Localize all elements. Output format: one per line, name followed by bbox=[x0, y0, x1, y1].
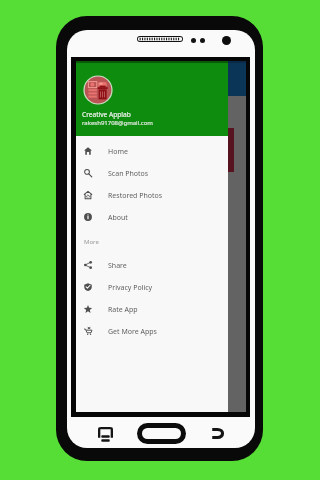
staticText: Rate App bbox=[108, 305, 138, 315]
button[interactable]: Share bbox=[76, 253, 228, 275]
button[interactable]: Get More Apps bbox=[76, 319, 228, 341]
button[interactable]: Back bbox=[207, 423, 228, 444]
staticText: About bbox=[108, 213, 128, 223]
staticText: Scan Photos bbox=[108, 169, 149, 179]
button[interactable]: Scan Photos bbox=[76, 161, 228, 183]
staticText: Get More Apps bbox=[108, 327, 157, 337]
button[interactable]: Privacy Policy bbox=[76, 275, 228, 297]
button[interactable]: Home bbox=[137, 423, 186, 444]
staticText: More bbox=[84, 238, 99, 246]
staticText: Restored Photos bbox=[108, 191, 163, 201]
button[interactable]: Home bbox=[76, 139, 228, 161]
staticText: Creative Applab bbox=[82, 110, 131, 119]
staticText: Share bbox=[108, 261, 127, 271]
staticText: Privacy Policy bbox=[108, 283, 153, 293]
button[interactable]: Recent apps bbox=[95, 424, 116, 445]
button[interactable]: Creative Applab bbox=[76, 61, 228, 136]
button[interactable]: Rate App bbox=[76, 297, 228, 319]
button[interactable]: Restored Photos bbox=[76, 183, 228, 205]
button[interactable]: About bbox=[76, 205, 228, 227]
staticText: Home bbox=[108, 147, 128, 157]
staticText: rakesh91708@gmail.com bbox=[82, 119, 153, 127]
